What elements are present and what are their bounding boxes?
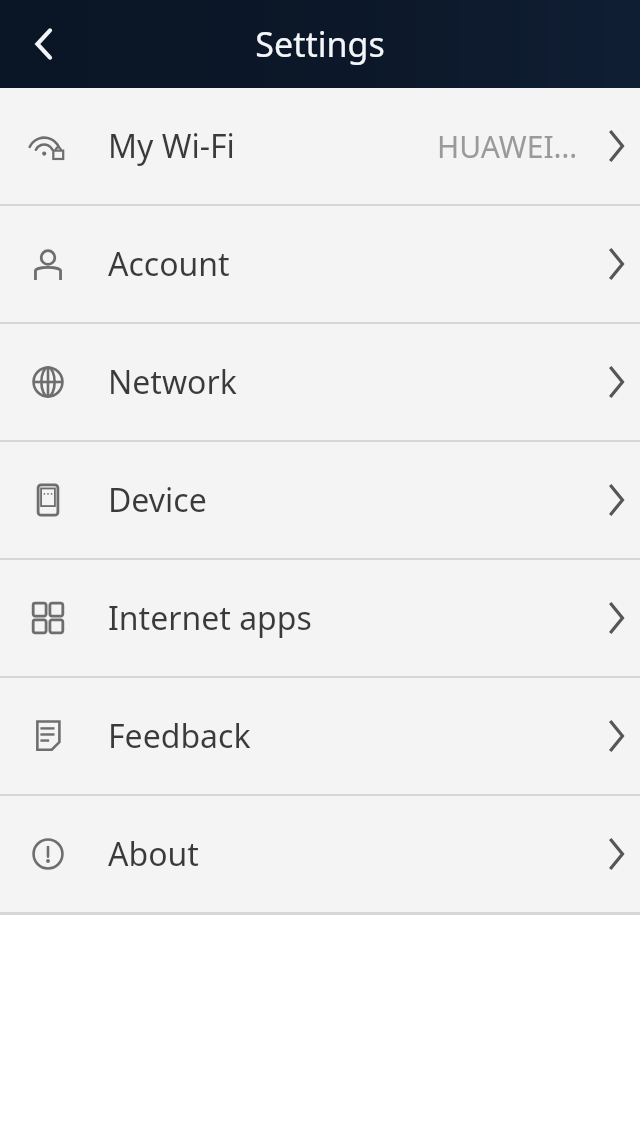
button[interactable]: Network [0,324,640,440]
button[interactable]: Account [0,206,640,322]
button[interactable]: About [0,796,640,912]
staticText: Feedback [108,714,251,758]
button[interactable]: My Wi-Fi [0,88,640,204]
button[interactable]: Feedback [0,678,640,794]
button[interactable]: Internet apps [0,560,640,676]
staticText: My Wi-Fi [108,124,235,168]
staticText: Network [108,360,237,404]
button[interactable]: Back [0,0,88,88]
staticText: HUAWEI… [437,126,578,167]
staticText: Internet apps [108,596,312,640]
staticText: About [108,832,199,876]
button[interactable]: Device [0,442,640,558]
staticText: Account [108,242,230,286]
staticText: Device [108,478,207,522]
staticText: Settings [255,21,385,67]
